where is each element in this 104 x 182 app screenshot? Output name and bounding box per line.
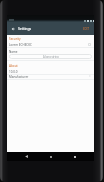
button[interactable]: 10.0.0 [7,69,94,75]
button[interactable]: Recent apps [70,152,79,161]
button[interactable]: Back [22,152,31,161]
staticText: A long string [43,55,59,59]
staticText: Lorem ECHECKC [9,43,32,47]
button[interactable]: Name [7,49,94,55]
staticText: Security [9,37,21,41]
button[interactable]: Lorem ECHECKC [7,42,94,48]
button[interactable]: A long string [9,54,92,59]
button[interactable]: EDIT [79,27,94,31]
staticText: About [9,64,18,68]
button[interactable]: Navigate up [7,23,18,34]
staticText: 10.0.0 [9,70,18,74]
staticText: EDIT [83,27,90,31]
staticText: Manufacturer [9,75,29,79]
button[interactable]: Manufacturer [7,74,94,80]
staticText: Name [9,50,18,54]
button[interactable]: Home [46,152,55,161]
staticText: Settings [18,26,32,31]
